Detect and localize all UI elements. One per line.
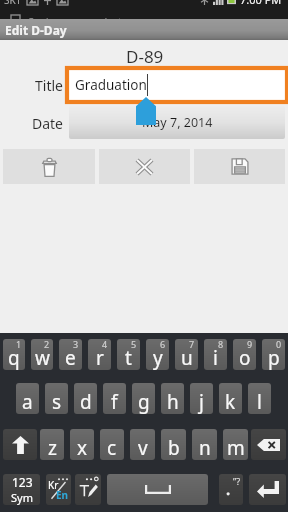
- button[interactable]: Graduation: [67, 68, 287, 102]
- staticText: Sym: [11, 490, 33, 505]
- button[interactable]: c: [100, 429, 124, 460]
- button[interactable]: k: [219, 383, 242, 414]
- staticText: d: [80, 389, 92, 414]
- button[interactable]: f: [103, 383, 126, 414]
- button[interactable]: Enter: [249, 474, 286, 505]
- staticText: c: [107, 435, 117, 460]
- staticText: f: [111, 389, 118, 414]
- staticText: Kr: [48, 478, 59, 492]
- button[interactable]: s: [45, 383, 68, 414]
- button[interactable]: Delete: [3, 149, 95, 184]
- button[interactable]: Shift: [3, 429, 37, 460]
- button[interactable]: l: [248, 383, 271, 414]
- staticText: m: [227, 435, 245, 460]
- staticText: t: [125, 345, 132, 370]
- staticText: 0: [276, 339, 282, 350]
- staticText: n: [199, 435, 211, 460]
- staticText: Edit D-Day: [5, 22, 67, 38]
- staticText: k: [225, 389, 236, 414]
- button[interactable]: v: [130, 429, 155, 460]
- button[interactable]: Space: [107, 474, 208, 505]
- staticText: q: [8, 345, 20, 370]
- staticText: o: [239, 345, 251, 370]
- staticText: D-89: [126, 45, 164, 68]
- button[interactable]: x: [70, 429, 94, 460]
- staticText: 9: [247, 339, 253, 350]
- staticText: a: [22, 389, 33, 414]
- staticText: r: [96, 345, 104, 370]
- button[interactable]: May 7, 2014: [69, 106, 285, 139]
- button[interactable]: m: [223, 429, 248, 460]
- staticText: z: [48, 435, 57, 460]
- staticText: l: [257, 389, 262, 414]
- staticText: 2: [44, 339, 50, 350]
- button[interactable]: b: [161, 429, 186, 460]
- staticText: g: [138, 389, 150, 414]
- button[interactable]: Backspace: [251, 429, 286, 460]
- button[interactable]: Save: [194, 149, 285, 184]
- staticText: 4: [102, 339, 108, 350]
- staticText: 1: [16, 339, 22, 350]
- button[interactable]: Handwriting: [75, 474, 101, 505]
- staticText: SKT: [4, 0, 22, 7]
- button[interactable]: u: [175, 339, 198, 370]
- button[interactable]: Period: [219, 474, 243, 505]
- staticText: May 7, 2014: [142, 114, 213, 131]
- button[interactable]: d: [74, 383, 97, 414]
- staticText: x: [77, 435, 88, 460]
- staticText: 3: [73, 339, 79, 350]
- staticText: j: [199, 389, 204, 414]
- button[interactable]: j: [190, 383, 213, 414]
- button[interactable]: p: [262, 339, 285, 370]
- button[interactable]: t: [117, 339, 140, 370]
- staticText: Saving screenshot...: [28, 14, 131, 19]
- staticText: b: [168, 435, 180, 460]
- button[interactable]: i: [204, 339, 227, 370]
- button[interactable]: n: [192, 429, 217, 460]
- button[interactable]: Symbols: [3, 474, 40, 505]
- button[interactable]: r: [88, 339, 111, 370]
- staticText: h: [167, 389, 179, 414]
- staticText: 123: [12, 474, 33, 490]
- staticText: Date: [0, 114, 63, 133]
- button[interactable]: y: [146, 339, 169, 370]
- staticText: En: [56, 488, 69, 502]
- staticText: ”?: [233, 475, 241, 487]
- button[interactable]: Change language: [46, 474, 71, 505]
- staticText: y: [153, 345, 163, 370]
- button[interactable]: q: [3, 339, 25, 370]
- button[interactable]: h: [161, 383, 184, 414]
- staticText: v: [138, 435, 148, 460]
- button[interactable]: Cancel: [99, 149, 190, 184]
- button[interactable]: a: [16, 383, 39, 414]
- button[interactable]: z: [40, 429, 64, 460]
- staticText: Graduation: [75, 76, 147, 94]
- staticText: p: [268, 345, 280, 370]
- staticText: 5: [131, 339, 137, 350]
- staticText: Title: [0, 76, 63, 95]
- button[interactable]: w: [31, 339, 53, 370]
- staticText: 8: [218, 339, 224, 350]
- staticText: i: [213, 345, 218, 370]
- button[interactable]: o: [233, 339, 256, 370]
- button[interactable]: g: [132, 383, 155, 414]
- staticText: 6: [160, 339, 166, 350]
- button[interactable]: e: [59, 339, 82, 370]
- staticText: e: [65, 345, 76, 370]
- staticText: u: [181, 345, 193, 370]
- staticText: 7:00 PM: [240, 0, 282, 7]
- staticText: 7: [189, 339, 195, 350]
- staticText: s: [52, 389, 62, 414]
- staticText: w: [35, 345, 50, 370]
